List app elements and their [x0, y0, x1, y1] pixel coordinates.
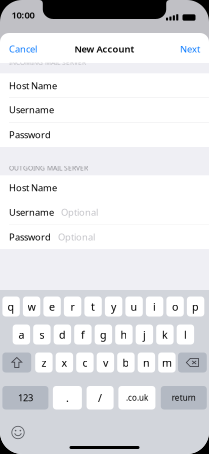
button[interactable]: d	[54, 324, 71, 344]
staticText: l	[184, 327, 187, 342]
staticText: return	[172, 392, 196, 403]
staticText: OUTGOING MAIL SERVER	[9, 164, 88, 172]
button[interactable]: n	[138, 352, 155, 372]
button[interactable]: p	[187, 296, 204, 316]
staticText: d	[59, 327, 66, 342]
button[interactable]: Host Name	[0, 73, 209, 98]
button[interactable]: c	[76, 352, 94, 372]
staticText: t	[91, 299, 95, 314]
staticText: u	[131, 299, 138, 314]
staticText: v	[103, 355, 108, 370]
button[interactable]: w	[23, 296, 40, 316]
button[interactable]: Cancel	[0, 36, 55, 62]
staticText: c	[82, 355, 87, 370]
staticText: s	[39, 327, 44, 342]
staticText: Host Name	[9, 79, 57, 92]
staticText: p	[192, 299, 199, 314]
staticText: f	[81, 327, 85, 342]
staticText: .	[66, 391, 69, 405]
button[interactable]: k	[156, 324, 174, 344]
staticText: w	[28, 299, 36, 314]
button[interactable]: o	[166, 296, 184, 316]
button[interactable]: i	[146, 296, 163, 316]
staticText: Password	[9, 128, 51, 141]
button[interactable]: s	[33, 324, 51, 344]
button[interactable]: q	[2, 296, 20, 316]
staticText: b	[122, 355, 129, 370]
button[interactable]: /	[87, 386, 114, 409]
button[interactable]: return	[161, 386, 207, 409]
staticText: q	[8, 299, 15, 314]
staticText: k	[162, 327, 168, 342]
staticText: r	[71, 299, 75, 314]
staticText: Cancel	[9, 43, 37, 55]
staticText: m	[162, 355, 172, 370]
button[interactable]: Password	[0, 122, 209, 147]
staticText: y	[111, 299, 116, 314]
button[interactable]: j	[136, 324, 153, 344]
staticText: Host Name	[9, 181, 57, 194]
staticText: g	[100, 327, 107, 342]
button[interactable]: t	[84, 296, 102, 316]
button[interactable]: b	[117, 352, 135, 372]
staticText: /	[98, 391, 102, 405]
staticText: Next	[180, 43, 200, 55]
button[interactable]: h	[115, 324, 133, 344]
staticText: h	[120, 327, 127, 342]
staticText: Optional	[61, 206, 98, 218]
staticText: Optional	[58, 231, 95, 243]
staticText: z	[41, 355, 46, 370]
staticText: 123	[18, 392, 33, 404]
button[interactable]: u	[125, 296, 143, 316]
button[interactable]: v	[97, 352, 114, 372]
button[interactable]: Password	[0, 225, 209, 249]
button[interactable]: e	[43, 296, 61, 316]
button[interactable]: x	[56, 352, 73, 372]
staticText: Username	[9, 206, 54, 218]
staticText: Username	[9, 103, 54, 116]
button[interactable]: Delete	[178, 352, 207, 372]
button[interactable]: r	[64, 296, 81, 316]
staticText: .co.uk	[126, 392, 148, 403]
button[interactable]: Host Name	[0, 175, 209, 200]
staticText: a	[18, 327, 24, 342]
button[interactable]: Emoji keyboard	[8, 422, 28, 442]
button[interactable]: Shift	[2, 352, 31, 372]
staticText: New Account	[74, 43, 134, 55]
staticText: i	[153, 299, 156, 314]
button[interactable]: Username	[0, 97, 209, 122]
button[interactable]: l	[177, 324, 194, 344]
staticText: 10:00	[11, 9, 34, 21]
button[interactable]: m	[158, 352, 176, 372]
button[interactable]: f	[74, 324, 92, 344]
button[interactable]: .	[53, 386, 82, 409]
button[interactable]: y	[105, 296, 122, 316]
button[interactable]: Next	[162, 36, 209, 62]
button[interactable]: Username	[0, 200, 209, 224]
staticText: j	[143, 327, 146, 342]
staticText: o	[172, 299, 178, 314]
staticText: Password	[9, 231, 51, 243]
button[interactable]: .co.uk	[118, 386, 155, 409]
staticText: x	[61, 355, 67, 370]
button[interactable]: 123	[2, 386, 48, 409]
button[interactable]: z	[35, 352, 53, 372]
staticText: e	[49, 299, 55, 314]
button[interactable]: a	[13, 324, 30, 344]
staticText: INCOMING MAIL SERVER	[9, 58, 86, 67]
staticText: n	[143, 355, 150, 370]
button[interactable]: g	[95, 324, 112, 344]
